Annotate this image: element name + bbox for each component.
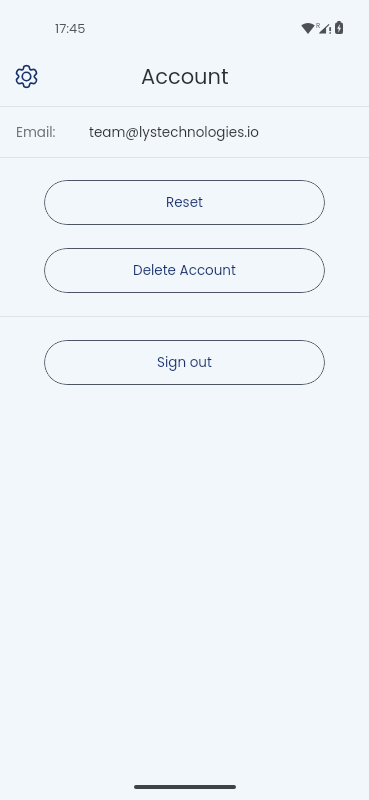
staticText: Email: [16, 123, 56, 142]
staticText: team@lystechnologies.io [89, 123, 259, 142]
staticText: Delete Account [133, 261, 236, 280]
staticText: R [316, 21, 321, 31]
staticText: Reset [166, 193, 203, 212]
button[interactable]: Delete Account [44, 248, 325, 293]
staticText: 17:45 [55, 19, 86, 37]
staticText: Sign out [157, 353, 212, 372]
button[interactable]: Sign out [44, 340, 325, 385]
button[interactable]: Reset [44, 180, 325, 225]
button[interactable]: Settings [5, 55, 47, 97]
staticText: Account [141, 62, 229, 91]
